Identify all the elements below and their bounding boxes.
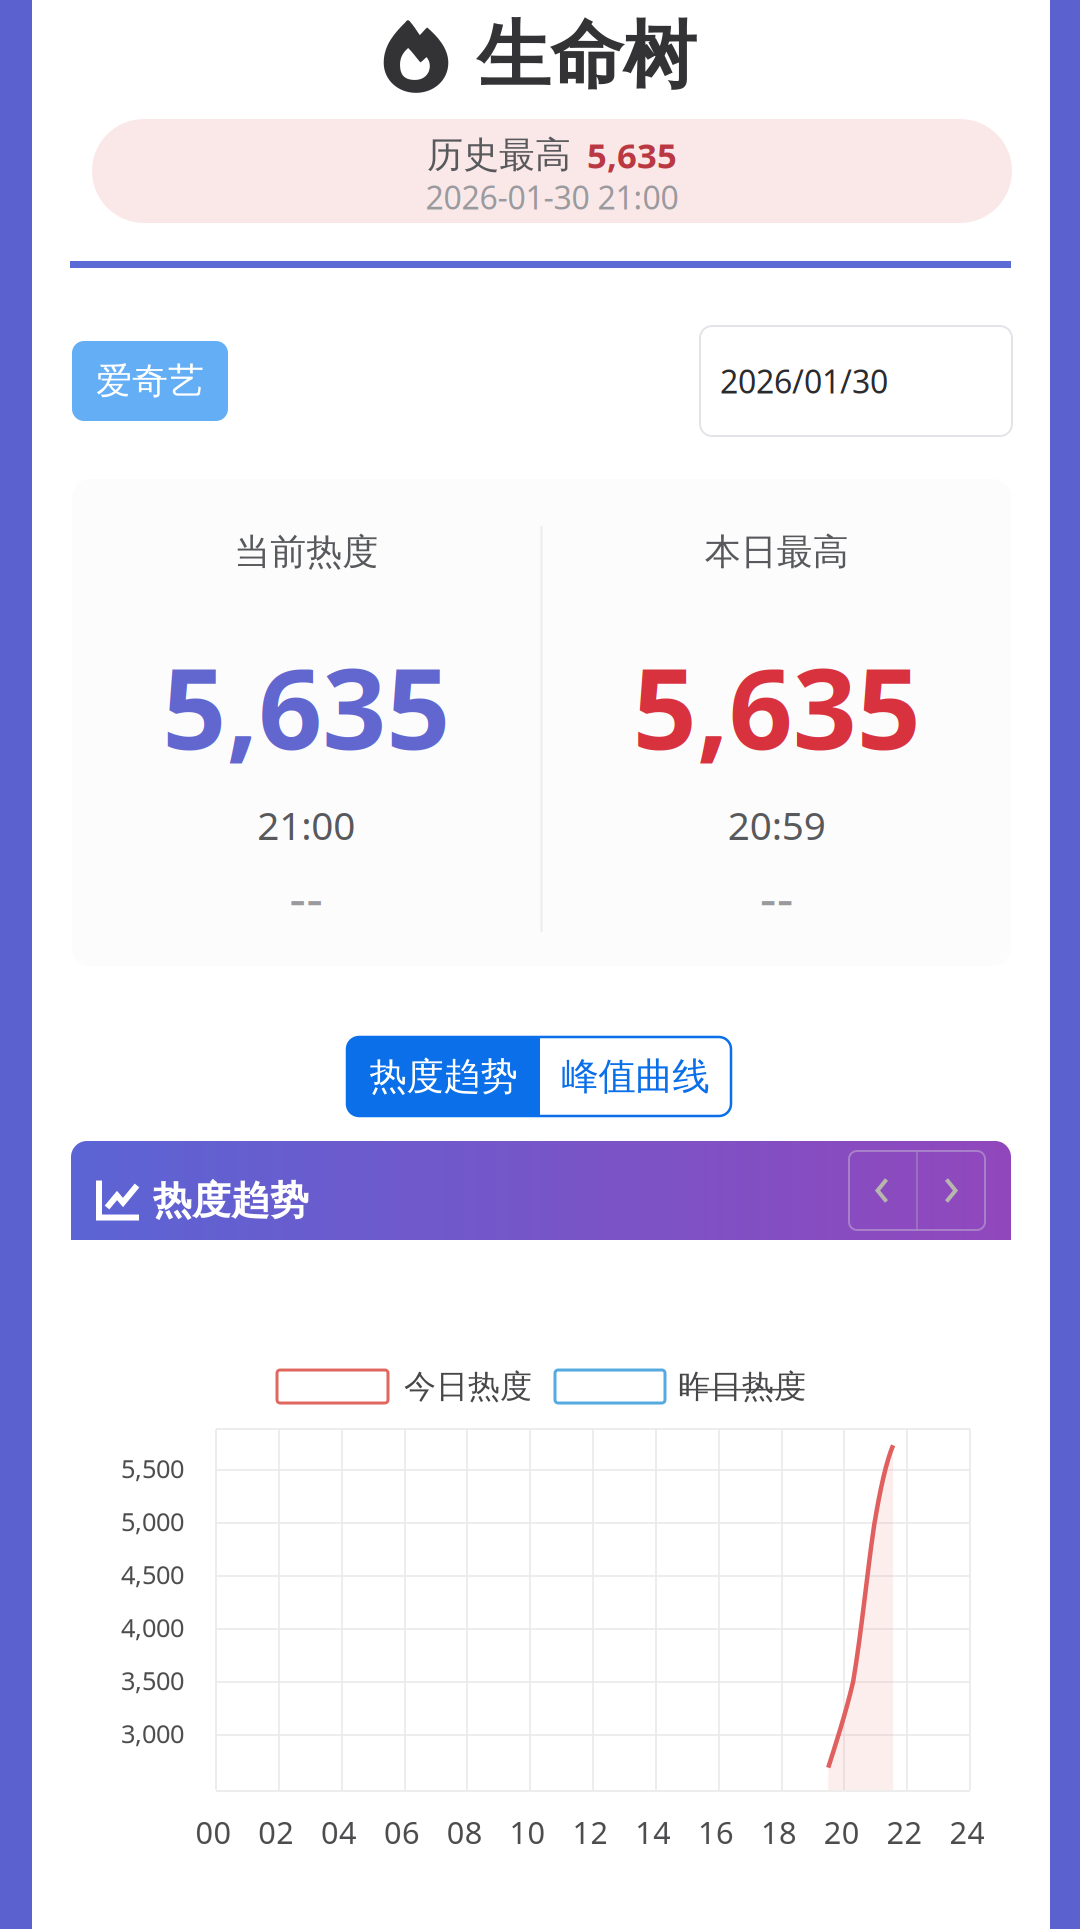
staticText: 4,000: [121, 1611, 184, 1644]
staticText: 16: [698, 1812, 734, 1852]
staticText: 22: [886, 1812, 922, 1852]
staticText: 热度趋势: [153, 1177, 309, 1224]
staticText: 3,500: [121, 1664, 184, 1697]
staticText: 当前热度: [234, 530, 378, 574]
staticText: 02: [258, 1812, 294, 1852]
staticText: 5,635: [162, 632, 450, 780]
staticText: --: [760, 862, 794, 932]
staticText: 10: [510, 1812, 546, 1852]
staticText: --: [289, 862, 323, 932]
staticText: 08: [447, 1812, 483, 1852]
staticText: 本日最高: [705, 530, 849, 574]
button[interactable]: Next period: [918, 1151, 985, 1230]
staticText: 5,000: [121, 1505, 184, 1538]
button[interactable]: 热度趋势: [347, 1037, 540, 1116]
staticText: 昨日热度: [678, 1367, 806, 1406]
staticText: 04: [321, 1812, 357, 1852]
staticText: 历史最高: [427, 133, 571, 177]
button[interactable]: 峰值曲线: [540, 1037, 731, 1116]
staticText: 24: [949, 1812, 985, 1852]
staticText: 5,500: [121, 1452, 184, 1485]
staticText: 5,635: [633, 632, 921, 780]
staticText: 3,000: [121, 1717, 184, 1750]
staticText: 峰值曲线: [561, 1054, 709, 1099]
staticText: 18: [761, 1812, 797, 1852]
staticText: 2026-01-30 21:00: [425, 176, 678, 218]
staticText: 20:59: [728, 799, 826, 851]
staticText: 今日热度: [404, 1367, 532, 1406]
staticText: 2026/01/30: [720, 360, 888, 402]
staticText: 爱奇艺: [96, 359, 204, 403]
staticText: 4,500: [121, 1558, 184, 1591]
staticText: 生命树: [477, 11, 696, 101]
staticText: 12: [572, 1812, 608, 1852]
staticText: 06: [384, 1812, 420, 1852]
staticText: 00: [195, 1812, 231, 1852]
button[interactable]: Previous period: [849, 1151, 916, 1230]
staticText: 21:00: [257, 799, 355, 851]
button[interactable]: 2026/01/30: [700, 326, 1012, 436]
staticText: 5,635: [587, 132, 677, 178]
staticText: 热度趋势: [369, 1054, 517, 1099]
staticText: 14: [635, 1812, 671, 1852]
button[interactable]: 爱奇艺: [72, 341, 228, 421]
staticText: 20: [824, 1812, 860, 1852]
